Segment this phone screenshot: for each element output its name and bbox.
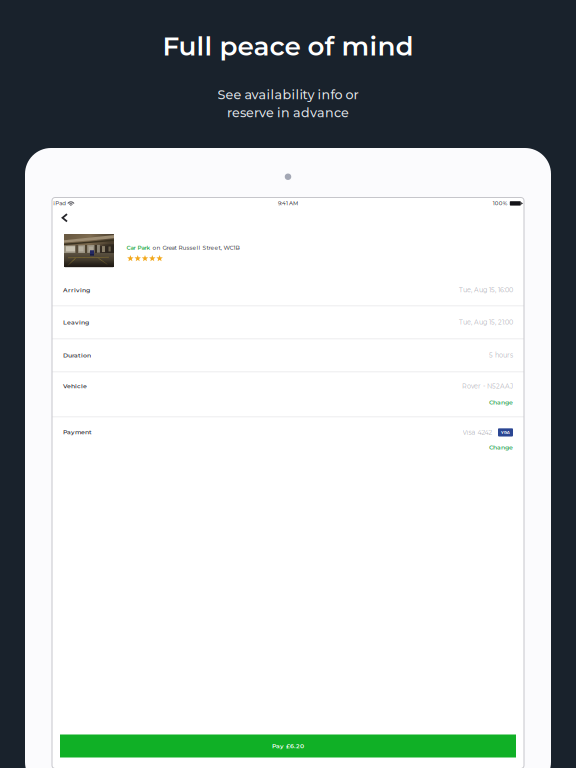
staticText: Arriving — [63, 286, 90, 294]
staticText: Pay £6.20 — [272, 742, 304, 750]
button[interactable]: Pay £6.20 — [60, 734, 516, 757]
button[interactable]: Change — [489, 443, 513, 451]
staticText: Full peace of mind — [162, 30, 413, 62]
staticText: See availability info or — [217, 87, 358, 102]
staticText: 5 hours — [489, 351, 513, 359]
staticText: Tue, Aug 15, 21:00 — [459, 318, 513, 326]
staticText: Payment — [63, 428, 92, 436]
staticText: reserve in advance — [227, 105, 349, 120]
staticText: Vehicle — [63, 382, 87, 390]
staticText: Rover - N52AAJ — [462, 382, 513, 390]
staticText: Change — [489, 443, 513, 451]
staticText: Change — [489, 399, 513, 406]
staticText: 9:41 AM — [278, 200, 298, 207]
staticText: 100% — [493, 200, 508, 207]
staticText: iPad — [53, 200, 66, 207]
staticText: Leaving — [63, 319, 89, 326]
button[interactable]: Change — [489, 399, 513, 406]
button[interactable]: Back — [54, 209, 75, 227]
staticText: Car Park on Great Russell Street, WC1B — [126, 244, 239, 251]
staticText: Tue, Aug 15, 16:00 — [459, 286, 513, 294]
staticText: Visa 4242 — [462, 428, 492, 436]
staticText: VISA — [501, 430, 510, 435]
staticText: Duration — [63, 352, 91, 359]
